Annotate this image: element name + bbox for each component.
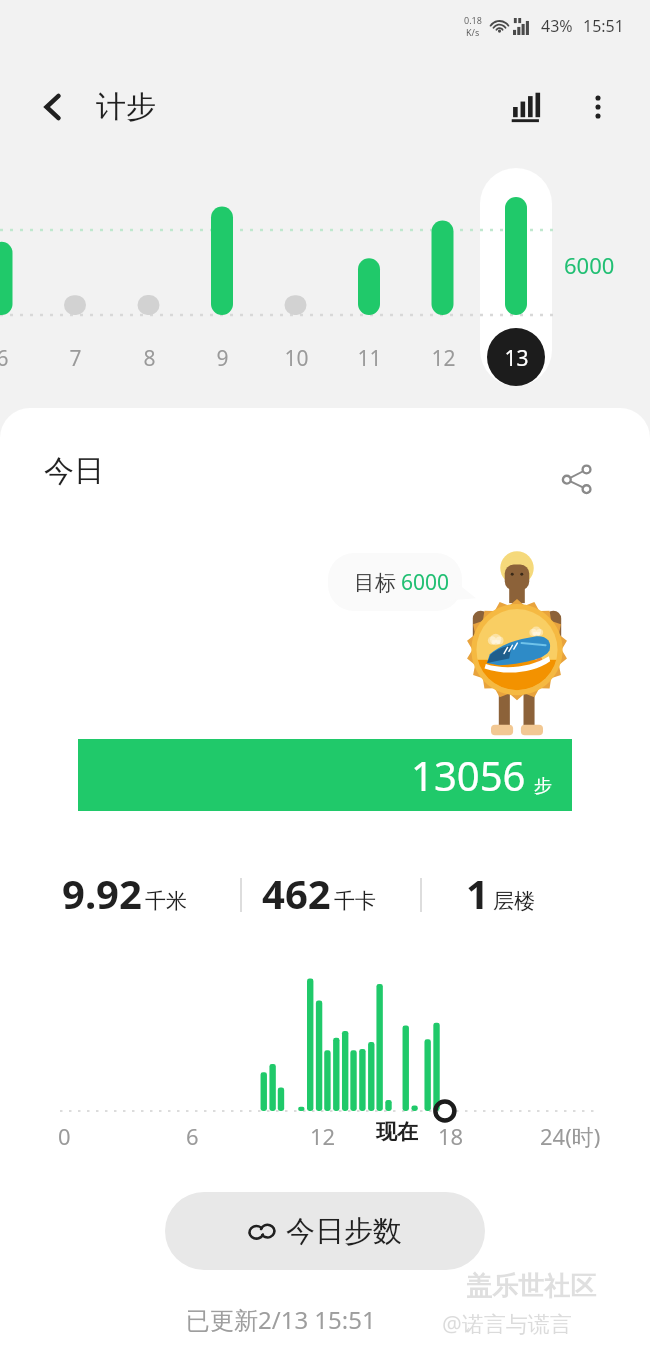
button[interactable]: Statistics xyxy=(500,81,552,133)
button[interactable]: 10 xyxy=(260,338,332,378)
staticText: 7 xyxy=(69,344,82,373)
staticText: 9.92 xyxy=(62,866,142,920)
staticText: 已更新2/13 15:51 xyxy=(186,1303,376,1336)
staticText: 43% xyxy=(541,15,573,37)
staticText: 0.18 xyxy=(464,14,482,26)
staticText: 今日步数 xyxy=(286,1213,402,1250)
button[interactable]: 今日步数 xyxy=(165,1192,485,1270)
button[interactable]: 13056 xyxy=(78,739,572,811)
staticText: 13 xyxy=(504,344,529,373)
staticText: 18 xyxy=(438,1121,464,1151)
staticText: 1 xyxy=(466,866,489,920)
staticText: 6000 xyxy=(401,568,450,597)
staticText: 12 xyxy=(431,344,456,373)
staticText: 24(时) xyxy=(540,1121,601,1151)
staticText: 计步 xyxy=(96,88,156,126)
staticText: 6000 xyxy=(564,250,615,280)
staticText: 9 xyxy=(216,344,229,373)
button[interactable]: 7 xyxy=(39,338,111,378)
button[interactable]: 12 xyxy=(407,338,479,378)
staticText: 10 xyxy=(284,344,309,373)
staticText: 千卡 xyxy=(334,888,376,914)
staticText: 13056 xyxy=(411,748,526,802)
button[interactable]: 8 xyxy=(113,338,185,378)
staticText: 8 xyxy=(143,344,156,373)
staticText: 千米 xyxy=(145,888,187,914)
staticText: 12 xyxy=(310,1121,336,1151)
button[interactable]: More options xyxy=(572,81,624,133)
staticText: 11 xyxy=(357,344,382,373)
staticText: @诺言与谎言 xyxy=(442,1308,572,1338)
staticText: 462 xyxy=(262,866,331,920)
staticText: 0 xyxy=(58,1121,71,1151)
staticText: K/s xyxy=(466,26,480,38)
staticText: 6 xyxy=(186,1121,199,1151)
staticText: 步 xyxy=(534,775,552,798)
button[interactable]: 9 xyxy=(186,338,258,378)
button[interactable]: 13 xyxy=(480,338,552,378)
staticText: 今日 xyxy=(44,452,104,490)
staticText: 层楼 xyxy=(493,888,535,914)
staticText: 15:51 xyxy=(583,15,624,37)
button[interactable]: Share xyxy=(548,450,606,508)
button[interactable]: 11 xyxy=(333,338,405,378)
button[interactable]: Back xyxy=(30,84,76,130)
staticText: 目标 xyxy=(354,570,396,596)
staticText: 盖乐世社区 xyxy=(466,1270,596,1303)
button[interactable]: 6 xyxy=(0,338,38,378)
staticText: 6 xyxy=(0,344,9,373)
staticText: 现在 xyxy=(376,1119,418,1145)
